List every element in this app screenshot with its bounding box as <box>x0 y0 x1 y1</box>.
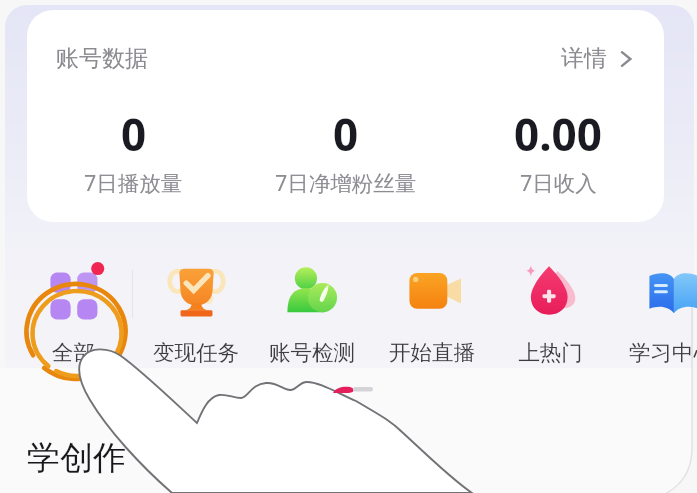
staticText: 账号数据 <box>56 44 148 73</box>
staticText: 0 <box>121 104 147 164</box>
button[interactable]: 开始直播 <box>375 262 489 368</box>
staticText: 0 <box>333 104 359 164</box>
staticText: 7日净增粉丝量 <box>275 168 417 197</box>
staticText: 上热门 <box>518 339 583 366</box>
button[interactable]: 变现任务 <box>139 262 253 368</box>
button[interactable]: 详情 <box>561 44 633 73</box>
staticText: 全部 <box>52 339 95 366</box>
button[interactable]: 上热门 <box>493 262 607 368</box>
button[interactable]: 学习中心 <box>615 262 697 368</box>
staticText: 0.00 <box>514 104 602 164</box>
staticText: 7日播放量 <box>84 168 183 197</box>
button[interactable]: 全部 <box>16 262 130 368</box>
staticText: 学习中心 <box>629 339 697 366</box>
staticText: 详情 <box>561 44 607 73</box>
staticText: 开始直播 <box>389 339 475 366</box>
staticText: 学创作 <box>27 437 126 479</box>
staticText: 账号检测 <box>269 339 355 366</box>
staticText: 7日收入 <box>520 168 597 197</box>
staticText: 变现任务 <box>153 339 239 366</box>
button[interactable]: 账号检测 <box>255 262 369 368</box>
